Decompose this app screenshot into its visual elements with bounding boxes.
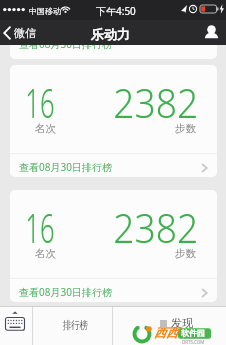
staticText: 查看08月30日排行榜 bbox=[19, 45, 112, 51]
button[interactable]: 查看08月30日排行榜 bbox=[10, 278, 217, 302]
staticText: 中国移动 bbox=[29, 6, 61, 16]
staticText: 2382 bbox=[113, 200, 199, 254]
staticText: 微信 bbox=[14, 26, 36, 40]
staticText: DRTS.COM bbox=[182, 339, 205, 345]
staticText: 名次 bbox=[35, 122, 56, 135]
button[interactable]: 微信 bbox=[0, 26, 36, 40]
button[interactable]: 排行榜 bbox=[33, 307, 112, 345]
staticText: 16 bbox=[25, 75, 55, 129]
staticText: 步数 bbox=[175, 122, 196, 135]
button[interactable] bbox=[0, 307, 32, 345]
staticText: 乐动力 bbox=[91, 26, 130, 42]
staticText: 16 bbox=[25, 200, 55, 254]
button[interactable] bbox=[204, 25, 226, 39]
staticText: 步数 bbox=[175, 247, 196, 260]
staticText: 查看08月30日排行榜 bbox=[19, 160, 112, 174]
staticText: 西西 bbox=[154, 325, 178, 340]
staticText: 排行榜 bbox=[63, 318, 88, 332]
button[interactable]: 查看08月30日排行榜 bbox=[10, 153, 217, 177]
button[interactable]: 发现 bbox=[113, 307, 226, 345]
staticText: 名次 bbox=[35, 247, 56, 260]
staticText: 查看08月30日排行榜 bbox=[19, 285, 112, 299]
staticText: 软件园 bbox=[181, 328, 205, 338]
staticText: 发现 bbox=[171, 316, 193, 330]
staticText: 2382 bbox=[113, 75, 199, 129]
staticText: 下午4:50 bbox=[96, 4, 136, 18]
